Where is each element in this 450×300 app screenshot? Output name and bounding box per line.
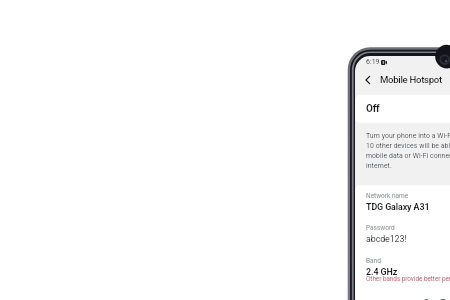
button[interactable]: Off [355, 95, 450, 123]
staticText: Network name [366, 192, 409, 200]
other: Back [360, 72, 376, 88]
staticText: TDG Galaxy A31 [366, 202, 430, 212]
staticText: 6:19 [366, 58, 380, 66]
staticText: Turn your phone into a Wi-Fi hotspot. Up… [366, 132, 450, 169]
staticText: Off [366, 103, 380, 115]
staticText: Mobile Hotspot [380, 74, 442, 85]
staticText: 2.4 GHz [366, 267, 398, 277]
staticText: abcde123! [366, 234, 407, 244]
staticText: Password [366, 224, 395, 232]
staticText: Band [366, 257, 381, 265]
button[interactable]: QR code [440, 299, 446, 300]
button[interactable]: Share network [424, 299, 429, 300]
button[interactable]: Back [360, 69, 442, 90]
staticText: Other bands provide better performance [366, 275, 450, 282]
